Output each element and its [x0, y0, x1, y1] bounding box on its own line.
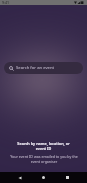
staticText: Your event ID was emailed to you by the … — [10, 154, 78, 164]
button[interactable]: Search for an event — [4, 62, 83, 74]
staticText: 9:41 — [2, 0, 10, 5]
staticText: Search by name, location, or event ID — [17, 141, 70, 151]
button[interactable]: Back — [13, 172, 26, 183]
button[interactable]: Home — [37, 172, 50, 183]
staticText: Search for an event — [16, 65, 55, 71]
button[interactable]: Recents — [61, 172, 74, 183]
